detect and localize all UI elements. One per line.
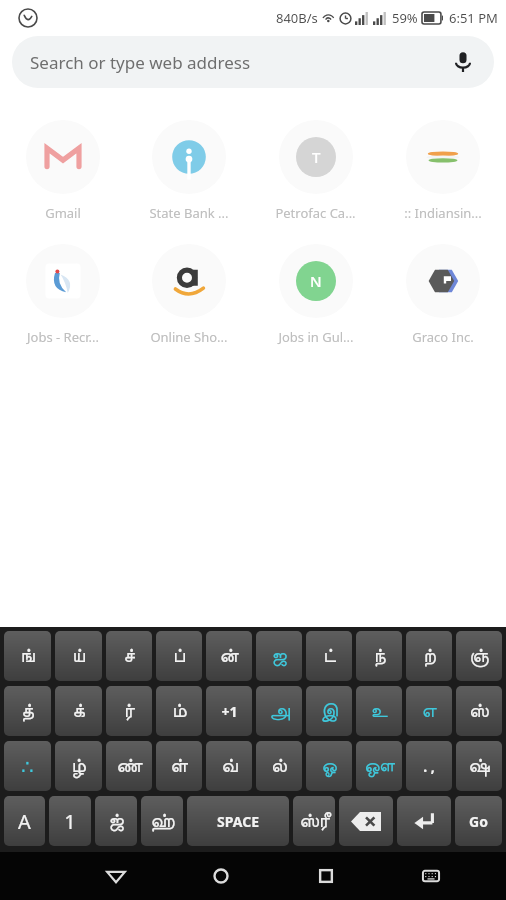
staticText: T	[312, 147, 321, 167]
button[interactable]: த்	[4, 686, 51, 736]
staticText: +1	[221, 702, 238, 721]
button[interactable]: Backspace	[339, 796, 393, 846]
staticText: SPACE	[217, 812, 259, 831]
staticText: ஓ	[321, 756, 337, 776]
staticText: ம்	[172, 701, 187, 721]
button[interactable]: ஔ	[356, 741, 402, 791]
button[interactable]: ஜ	[256, 631, 302, 681]
button[interactable]: ன்	[206, 631, 252, 681]
button[interactable]: ட்	[306, 631, 352, 681]
button[interactable]: ஜ்	[95, 796, 137, 846]
staticText: ற்	[423, 646, 436, 666]
button[interactable]: Home	[197, 852, 245, 900]
staticText: 840B/s	[276, 9, 318, 27]
button[interactable]: ∴	[4, 741, 51, 791]
button[interactable]: வ்	[206, 741, 252, 791]
button[interactable]: ழ்	[55, 741, 102, 791]
staticText: ள்	[170, 756, 188, 776]
button[interactable]: ஹ்	[141, 796, 183, 846]
staticText: ப்	[173, 646, 185, 666]
staticText: ல்	[271, 756, 287, 776]
staticText: ∴	[21, 755, 34, 778]
staticText: Jobs in Gul...	[278, 328, 354, 346]
button[interactable]: Go	[455, 796, 502, 846]
button[interactable]: ற்	[406, 631, 452, 681]
staticText: க்	[72, 701, 85, 721]
staticText: ட்	[323, 646, 336, 666]
button[interactable]: ய்	[55, 631, 102, 681]
staticText: ஸ்	[469, 701, 489, 721]
button[interactable]: Graco Inc.	[379, 240, 506, 350]
button[interactable]: Hide keyboard	[407, 852, 455, 900]
staticText: 1	[64, 808, 76, 835]
staticText: ர்	[124, 701, 135, 721]
button[interactable]: ஓ	[306, 741, 352, 791]
staticText: ஞ்	[469, 646, 489, 666]
staticText: . ,	[423, 757, 435, 776]
button[interactable]: ப்	[156, 631, 202, 681]
staticText: வ்	[221, 756, 238, 776]
staticText: இ	[320, 701, 338, 721]
button[interactable]: ங்	[4, 631, 51, 681]
button[interactable]: Online Sho...	[126, 240, 252, 350]
button[interactable]: Voice search	[446, 45, 480, 79]
button[interactable]: A	[4, 796, 45, 846]
staticText: :: Indiansin...	[404, 204, 482, 222]
button[interactable]: ச்	[106, 631, 152, 681]
button[interactable]: Search or type web address	[12, 36, 494, 88]
button[interactable]: State Bank ...	[126, 116, 252, 226]
button[interactable]: அ	[256, 686, 302, 736]
staticText: N	[310, 271, 322, 291]
button[interactable]: ர்	[106, 686, 152, 736]
staticText: ஜ	[271, 646, 287, 666]
staticText: Graco Inc.	[412, 328, 474, 346]
staticText: ச்	[123, 646, 135, 666]
staticText: ஸ்ரீ	[299, 811, 330, 831]
button[interactable]: Gmail	[0, 116, 126, 226]
staticText: Search or type web address	[30, 51, 251, 74]
button[interactable]: எ	[406, 686, 452, 736]
button[interactable]: . ,	[406, 741, 452, 791]
staticText: 6:51 PM	[449, 9, 498, 27]
staticText: Petrofac Ca...	[275, 204, 356, 222]
button[interactable]: ஞ்	[456, 631, 502, 681]
button[interactable]: ஸ்	[456, 686, 502, 736]
button[interactable]: ந்	[356, 631, 402, 681]
staticText: ஹ்	[150, 811, 175, 831]
staticText: ங்	[20, 646, 35, 666]
staticText: State Bank ...	[149, 204, 229, 222]
staticText: Gmail	[45, 204, 81, 222]
button[interactable]: SPACE	[187, 796, 289, 846]
button[interactable]: உ	[356, 686, 402, 736]
staticText: ழ்	[71, 756, 86, 776]
staticText: 59%	[392, 9, 418, 27]
button[interactable]: N	[252, 240, 379, 350]
button[interactable]: ள்	[156, 741, 202, 791]
staticText: Jobs - Recr...	[27, 328, 99, 346]
staticText: அ	[269, 701, 290, 721]
staticText: எ	[421, 701, 437, 721]
staticText: ஔ	[364, 756, 395, 776]
button[interactable]: +1	[206, 686, 252, 736]
button[interactable]: Recents	[302, 852, 350, 900]
button[interactable]: T	[252, 116, 379, 226]
button[interactable]: Enter	[397, 796, 451, 846]
button[interactable]: ண்	[106, 741, 152, 791]
button[interactable]: ல்	[256, 741, 302, 791]
staticText: ந்	[373, 646, 386, 666]
staticText: ன்	[219, 646, 239, 666]
staticText: த்	[21, 701, 34, 721]
button[interactable]: ம்	[156, 686, 202, 736]
button[interactable]: இ	[306, 686, 352, 736]
staticText: ஜ்	[108, 811, 124, 831]
button[interactable]: Back	[92, 852, 140, 900]
button[interactable]: 1	[49, 796, 91, 846]
staticText: ண்	[116, 756, 143, 776]
button[interactable]: Jobs - Recr...	[0, 240, 126, 350]
staticText: ய்	[72, 646, 85, 666]
button[interactable]: ஷ்	[456, 741, 502, 791]
button[interactable]: ஸ்ரீ	[293, 796, 335, 846]
button[interactable]: க்	[55, 686, 102, 736]
staticText: A	[18, 808, 31, 835]
button[interactable]: :: Indiansin...	[379, 116, 506, 226]
